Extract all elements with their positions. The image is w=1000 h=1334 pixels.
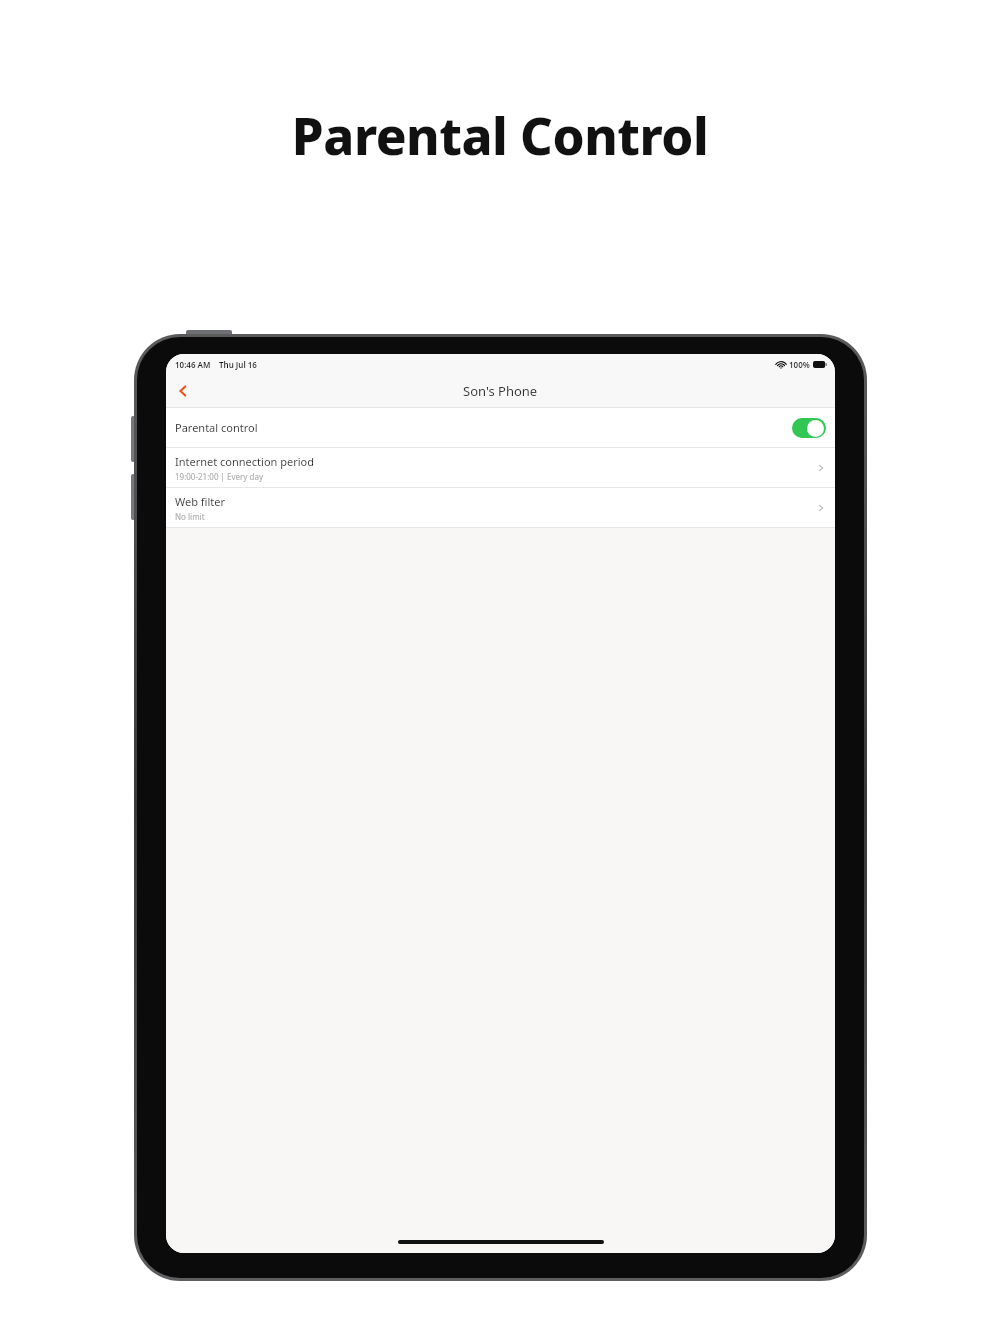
staticText: Parental control: [175, 420, 258, 435]
button[interactable]: Web filter: [166, 488, 835, 527]
staticText: Parental Control: [0, 100, 1000, 169]
button[interactable]: Back: [166, 374, 200, 407]
staticText: Web filter: [175, 494, 226, 509]
staticText: 100%: [789, 359, 810, 370]
button[interactable]: Internet connection period: [166, 448, 835, 487]
staticText: Son's Phone: [463, 382, 538, 400]
button[interactable]: Parental control toggle: [792, 418, 826, 438]
staticText: 10:46 AM: [175, 359, 211, 370]
button[interactable]: Parental control: [166, 408, 835, 447]
staticText: Thu Jul 16: [219, 359, 257, 370]
staticText: Internet connection period: [175, 454, 314, 469]
staticText: No limit: [175, 511, 205, 522]
staticText: 19:00-21:00 | Every day: [175, 471, 264, 482]
